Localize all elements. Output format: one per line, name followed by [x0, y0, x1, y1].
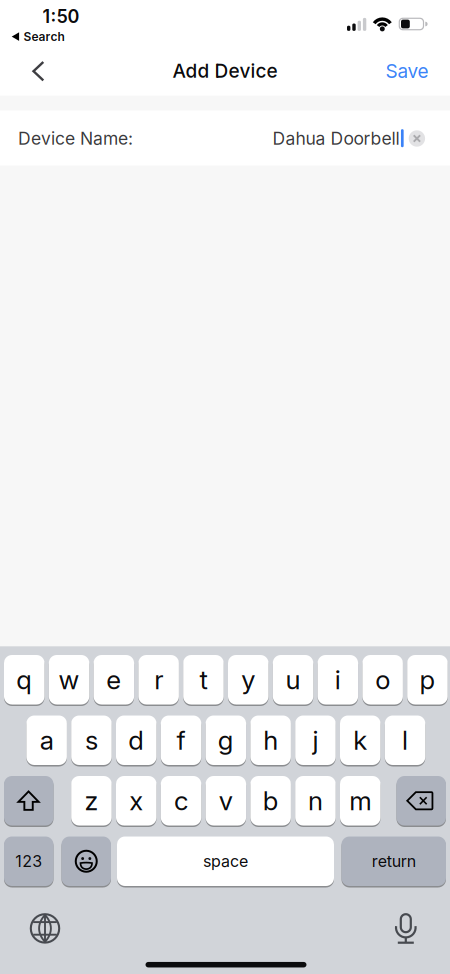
button[interactable]: f	[161, 715, 201, 765]
button[interactable]: q	[4, 655, 44, 704]
staticText: Save	[385, 60, 428, 83]
button[interactable]: s	[71, 715, 112, 765]
staticText: Device Name:	[18, 128, 133, 149]
button[interactable]: w	[49, 655, 89, 704]
button[interactable]: Delete	[396, 776, 446, 825]
staticText: o	[375, 664, 390, 695]
button[interactable]: v	[206, 776, 246, 825]
button[interactable]: c	[161, 776, 201, 825]
button[interactable]: Save	[372, 51, 442, 91]
button[interactable]: Back	[27, 56, 49, 86]
staticText: q	[16, 664, 32, 695]
button[interactable]: Clear text	[409, 130, 425, 147]
staticText: a	[40, 724, 54, 756]
button[interactable]: Device Name field	[0, 110, 450, 165]
staticText: g	[218, 724, 234, 756]
button[interactable]: d	[116, 715, 156, 765]
button[interactable]: Dictation	[396, 914, 416, 944]
staticText: r	[154, 664, 163, 695]
staticText: Search	[23, 29, 64, 44]
button[interactable]: h	[250, 715, 291, 765]
staticText: j	[312, 724, 318, 756]
staticText: Add Device	[172, 59, 277, 82]
staticText: m	[349, 785, 371, 816]
staticText: i	[335, 664, 341, 695]
staticText: x	[129, 785, 143, 816]
button[interactable]: Next keyboard	[31, 914, 59, 943]
button[interactable]: return	[341, 836, 446, 886]
button[interactable]: 123	[4, 836, 53, 886]
button[interactable]: j	[295, 715, 336, 765]
staticText: z	[84, 785, 98, 816]
staticText: h	[263, 724, 278, 756]
staticText: 1:50	[42, 5, 79, 27]
button[interactable]: n	[295, 776, 336, 825]
button[interactable]: a	[26, 715, 67, 765]
button[interactable]: k	[340, 715, 380, 765]
staticText: p	[419, 664, 435, 695]
staticText: s	[85, 724, 98, 756]
staticText: space	[203, 852, 248, 871]
button[interactable]: r	[138, 655, 179, 704]
staticText: return	[372, 852, 416, 871]
button[interactable]: Search	[11, 29, 64, 44]
button[interactable]: p	[407, 655, 448, 704]
button[interactable]: z	[71, 776, 112, 825]
staticText: y	[241, 664, 255, 695]
staticText: e	[106, 664, 121, 695]
staticText: 123	[15, 852, 42, 871]
button[interactable]: t	[183, 655, 224, 704]
staticText: k	[353, 724, 367, 756]
staticText: f	[176, 724, 185, 756]
button[interactable]: m	[340, 776, 380, 825]
button[interactable]: Emoji	[61, 836, 111, 886]
staticText: c	[174, 785, 188, 816]
staticText: l	[402, 724, 408, 756]
button[interactable]: b	[250, 776, 291, 825]
staticText: d	[128, 724, 144, 756]
button[interactable]: y	[228, 655, 268, 704]
button[interactable]: u	[273, 655, 313, 704]
staticText: b	[263, 785, 279, 816]
staticText: Dahua Doorbell	[273, 128, 400, 149]
staticText: w	[58, 664, 79, 695]
button[interactable]: Shift	[4, 776, 53, 825]
staticText: u	[285, 664, 300, 695]
staticText: t	[199, 664, 207, 695]
button[interactable]: i	[318, 655, 358, 704]
button[interactable]: l	[385, 715, 425, 765]
staticText: n	[308, 785, 323, 816]
button[interactable]: g	[206, 715, 246, 765]
button[interactable]: o	[362, 655, 403, 704]
button[interactable]: x	[116, 776, 156, 825]
button[interactable]: e	[94, 655, 134, 704]
button[interactable]: space	[117, 836, 334, 886]
staticText: v	[219, 785, 233, 816]
